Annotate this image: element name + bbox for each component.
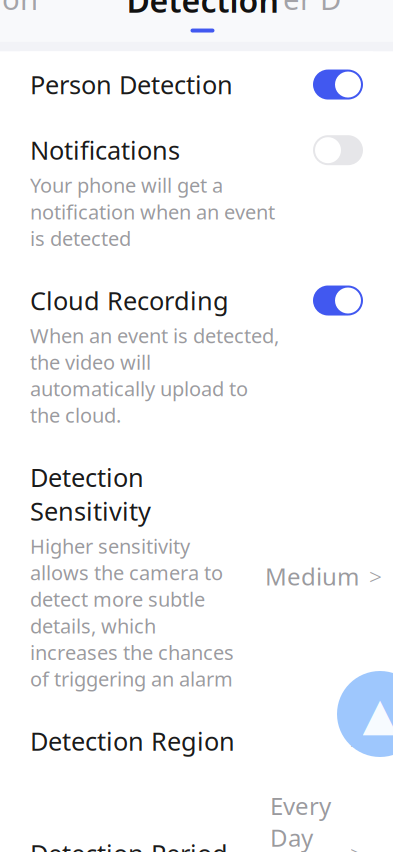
staticText: When an event is detected, the video wil… — [30, 322, 279, 428]
staticText: Person Detection — [126, 0, 278, 22]
button[interactable]: Alerts — [337, 671, 393, 757]
staticText: Your phone will get a notification when … — [30, 172, 275, 251]
staticText: Lingerer D — [283, 0, 380, 18]
button[interactable]: Lingerer D — [283, 0, 391, 38]
staticText: Detection Region — [30, 724, 235, 758]
staticText: Higher sensitivity allows the camera to … — [30, 533, 234, 692]
staticText: Detection — [2, 0, 110, 18]
staticText: Cloud Recording — [30, 283, 229, 317]
staticText: Person Detection — [30, 67, 233, 101]
button[interactable]: Person Detection — [126, 0, 278, 42]
button[interactable]: Notifications — [20, 117, 373, 267]
staticText: Detection Sensitivity — [30, 460, 151, 528]
staticText: Detection Period — [30, 837, 228, 852]
button[interactable]: Cloud Recording — [20, 267, 373, 444]
button[interactable]: Detection Sensitivity — [20, 444, 373, 708]
staticText: Every Day 00:00-23:59 — [270, 790, 340, 852]
staticText: Medium — [265, 560, 359, 592]
button[interactable]: Detection — [2, 0, 122, 38]
staticText: Notifications — [30, 133, 180, 167]
staticText: ▲ — [362, 688, 393, 740]
staticText: > — [350, 838, 363, 852]
button[interactable]: Detection Period — [20, 774, 373, 852]
staticText: > — [350, 726, 363, 756]
button[interactable]: Person Detection — [20, 51, 373, 117]
button[interactable]: Detection Region — [20, 708, 373, 774]
staticText: > — [369, 561, 382, 591]
